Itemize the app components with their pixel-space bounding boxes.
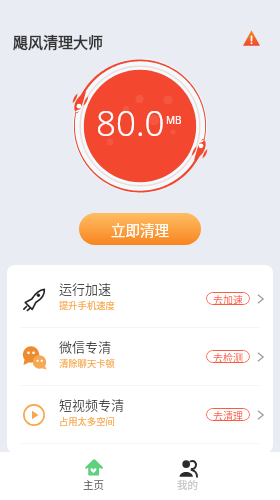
staticText: 运行加速 bbox=[59, 279, 112, 298]
button[interactable]: 立即清理 bbox=[79, 213, 201, 245]
staticText: 占用太多空间 bbox=[59, 414, 115, 427]
button[interactable]: 我的 bbox=[157, 452, 217, 500]
staticText: 提升手机速度 bbox=[59, 298, 115, 311]
staticText: 80.0 bbox=[96, 99, 165, 147]
staticText: MB bbox=[166, 113, 182, 127]
button[interactable]: 主页 bbox=[63, 452, 123, 500]
button[interactable]: 微信专清 bbox=[7, 328, 273, 385]
button[interactable]: 短视频专清 bbox=[7, 386, 273, 443]
staticText: 主页 bbox=[83, 477, 104, 492]
staticText: 短视频专清 bbox=[59, 395, 125, 414]
staticText: 立即清理 bbox=[111, 219, 169, 240]
staticText: 我的 bbox=[177, 477, 198, 492]
button[interactable]: 去清理 bbox=[206, 408, 250, 421]
button[interactable]: 运行加速 bbox=[7, 270, 273, 327]
staticText: 清除聊天卡顿 bbox=[59, 356, 115, 369]
button[interactable]: 去检测 bbox=[206, 350, 250, 363]
staticText: 去检测 bbox=[213, 350, 243, 363]
button[interactable]: 警告 bbox=[240, 27, 262, 49]
button[interactable]: 去加速 bbox=[206, 292, 250, 305]
staticText: 飓风清理大师 bbox=[13, 31, 104, 53]
staticText: 去清理 bbox=[213, 408, 243, 421]
staticText: 去加速 bbox=[213, 292, 243, 305]
staticText: 微信专清 bbox=[59, 337, 112, 356]
